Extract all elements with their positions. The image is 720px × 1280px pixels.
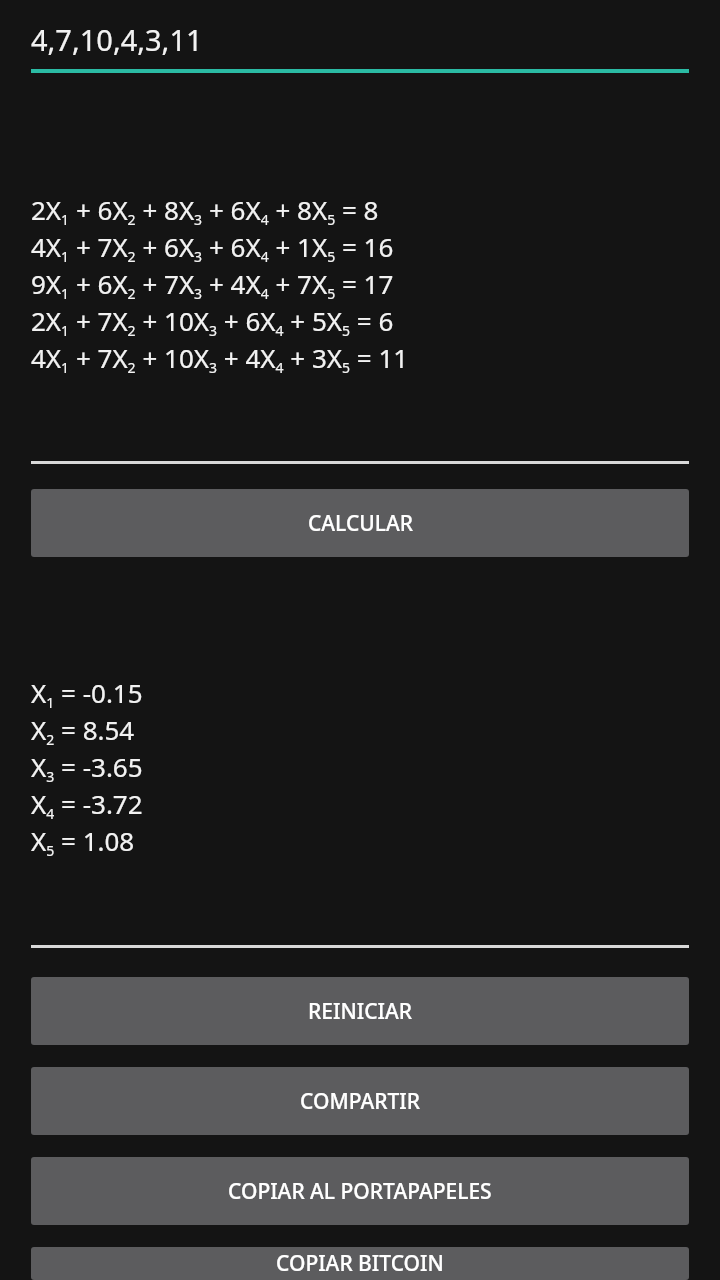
staticText: X1 = -0.15: [31, 675, 143, 712]
staticText: 9X1 + 6X2 + 7X3 + 4X4 + 7X5 = 17: [31, 266, 394, 303]
staticText: X4 = -3.72: [31, 786, 143, 823]
staticText: 4X1 + 7X2 + 10X3 + 4X4 + 3X5 = 11: [31, 340, 409, 377]
staticText: 4X1 + 7X2 + 6X3 + 6X4 + 1X5 = 16: [31, 229, 394, 266]
staticText: X3 = -3.65: [31, 749, 143, 786]
button[interactable]: COPIAR BITCOIN: [31, 1247, 689, 1280]
staticText: X2 = 8.54: [31, 712, 135, 749]
button[interactable]: REINICIAR: [31, 977, 689, 1045]
staticText: CALCULAR: [308, 509, 413, 538]
button[interactable]: COPIAR AL PORTAPAPELES: [31, 1157, 689, 1225]
button[interactable]: 4,7,10,4,3,11: [31, 20, 203, 59]
staticText: COPIAR BITCOIN: [276, 1249, 444, 1278]
staticText: 2X1 + 7X2 + 10X3 + 6X4 + 5X5 = 6: [31, 303, 394, 340]
staticText: X5 = 1.08: [31, 823, 135, 860]
button[interactable]: CALCULAR: [31, 489, 689, 557]
staticText: COPIAR AL PORTAPAPELES: [228, 1177, 492, 1206]
staticText: REINICIAR: [308, 997, 412, 1026]
button[interactable]: COMPARTIR: [31, 1067, 689, 1135]
staticText: 2X1 + 6X2 + 8X3 + 6X4 + 8X5 = 8: [31, 192, 379, 229]
staticText: COMPARTIR: [300, 1087, 420, 1116]
